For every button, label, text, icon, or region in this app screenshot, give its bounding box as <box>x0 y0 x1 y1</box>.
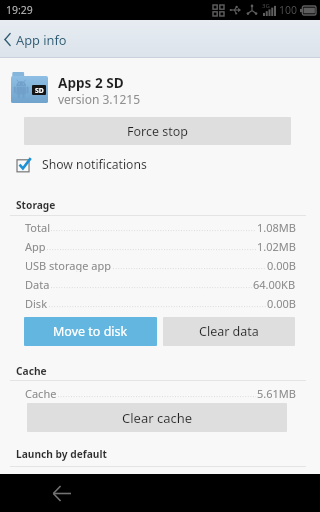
button[interactable]: Clear data <box>163 317 295 346</box>
staticText: 0.00B <box>267 258 296 272</box>
staticText: Cache <box>16 364 47 378</box>
staticText: 100 <box>279 3 298 17</box>
staticText: USB storage app <box>25 258 112 272</box>
staticText: Force stop <box>127 123 189 140</box>
staticText: SD <box>35 86 44 95</box>
button[interactable]: Show notifications <box>17 155 147 173</box>
staticText: 1.02MB <box>257 239 296 253</box>
button[interactable]: Back <box>44 474 80 512</box>
staticText: Move to disk <box>53 323 128 340</box>
staticText: Launch by default <box>16 447 107 461</box>
staticText: 0.00B <box>267 296 296 310</box>
staticText: version 3.1215 <box>58 91 140 107</box>
staticText: Cache <box>25 386 57 400</box>
button[interactable]: Clear cache <box>27 403 287 432</box>
staticText: Clear cache <box>122 409 193 427</box>
staticText: Data <box>25 277 50 291</box>
staticText: Total <box>25 220 50 234</box>
button[interactable]: App info <box>0 20 320 58</box>
staticText: 3G <box>262 2 270 10</box>
staticText: Clear data <box>199 323 259 340</box>
staticText: Storage <box>16 198 56 212</box>
staticText: Apps 2 SD <box>58 73 124 92</box>
staticText: App <box>25 239 46 253</box>
staticText: Disk <box>25 296 48 310</box>
button[interactable]: Move to disk <box>24 317 157 346</box>
staticText: Show notifications <box>42 156 147 173</box>
staticText: 64.00KB <box>253 277 296 291</box>
staticText: 5.61MB <box>257 386 296 400</box>
staticText: 19:29 <box>6 3 33 17</box>
button[interactable]: Force stop <box>24 117 291 145</box>
staticText: App info <box>16 31 67 48</box>
staticText: 1.08MB <box>257 220 296 234</box>
